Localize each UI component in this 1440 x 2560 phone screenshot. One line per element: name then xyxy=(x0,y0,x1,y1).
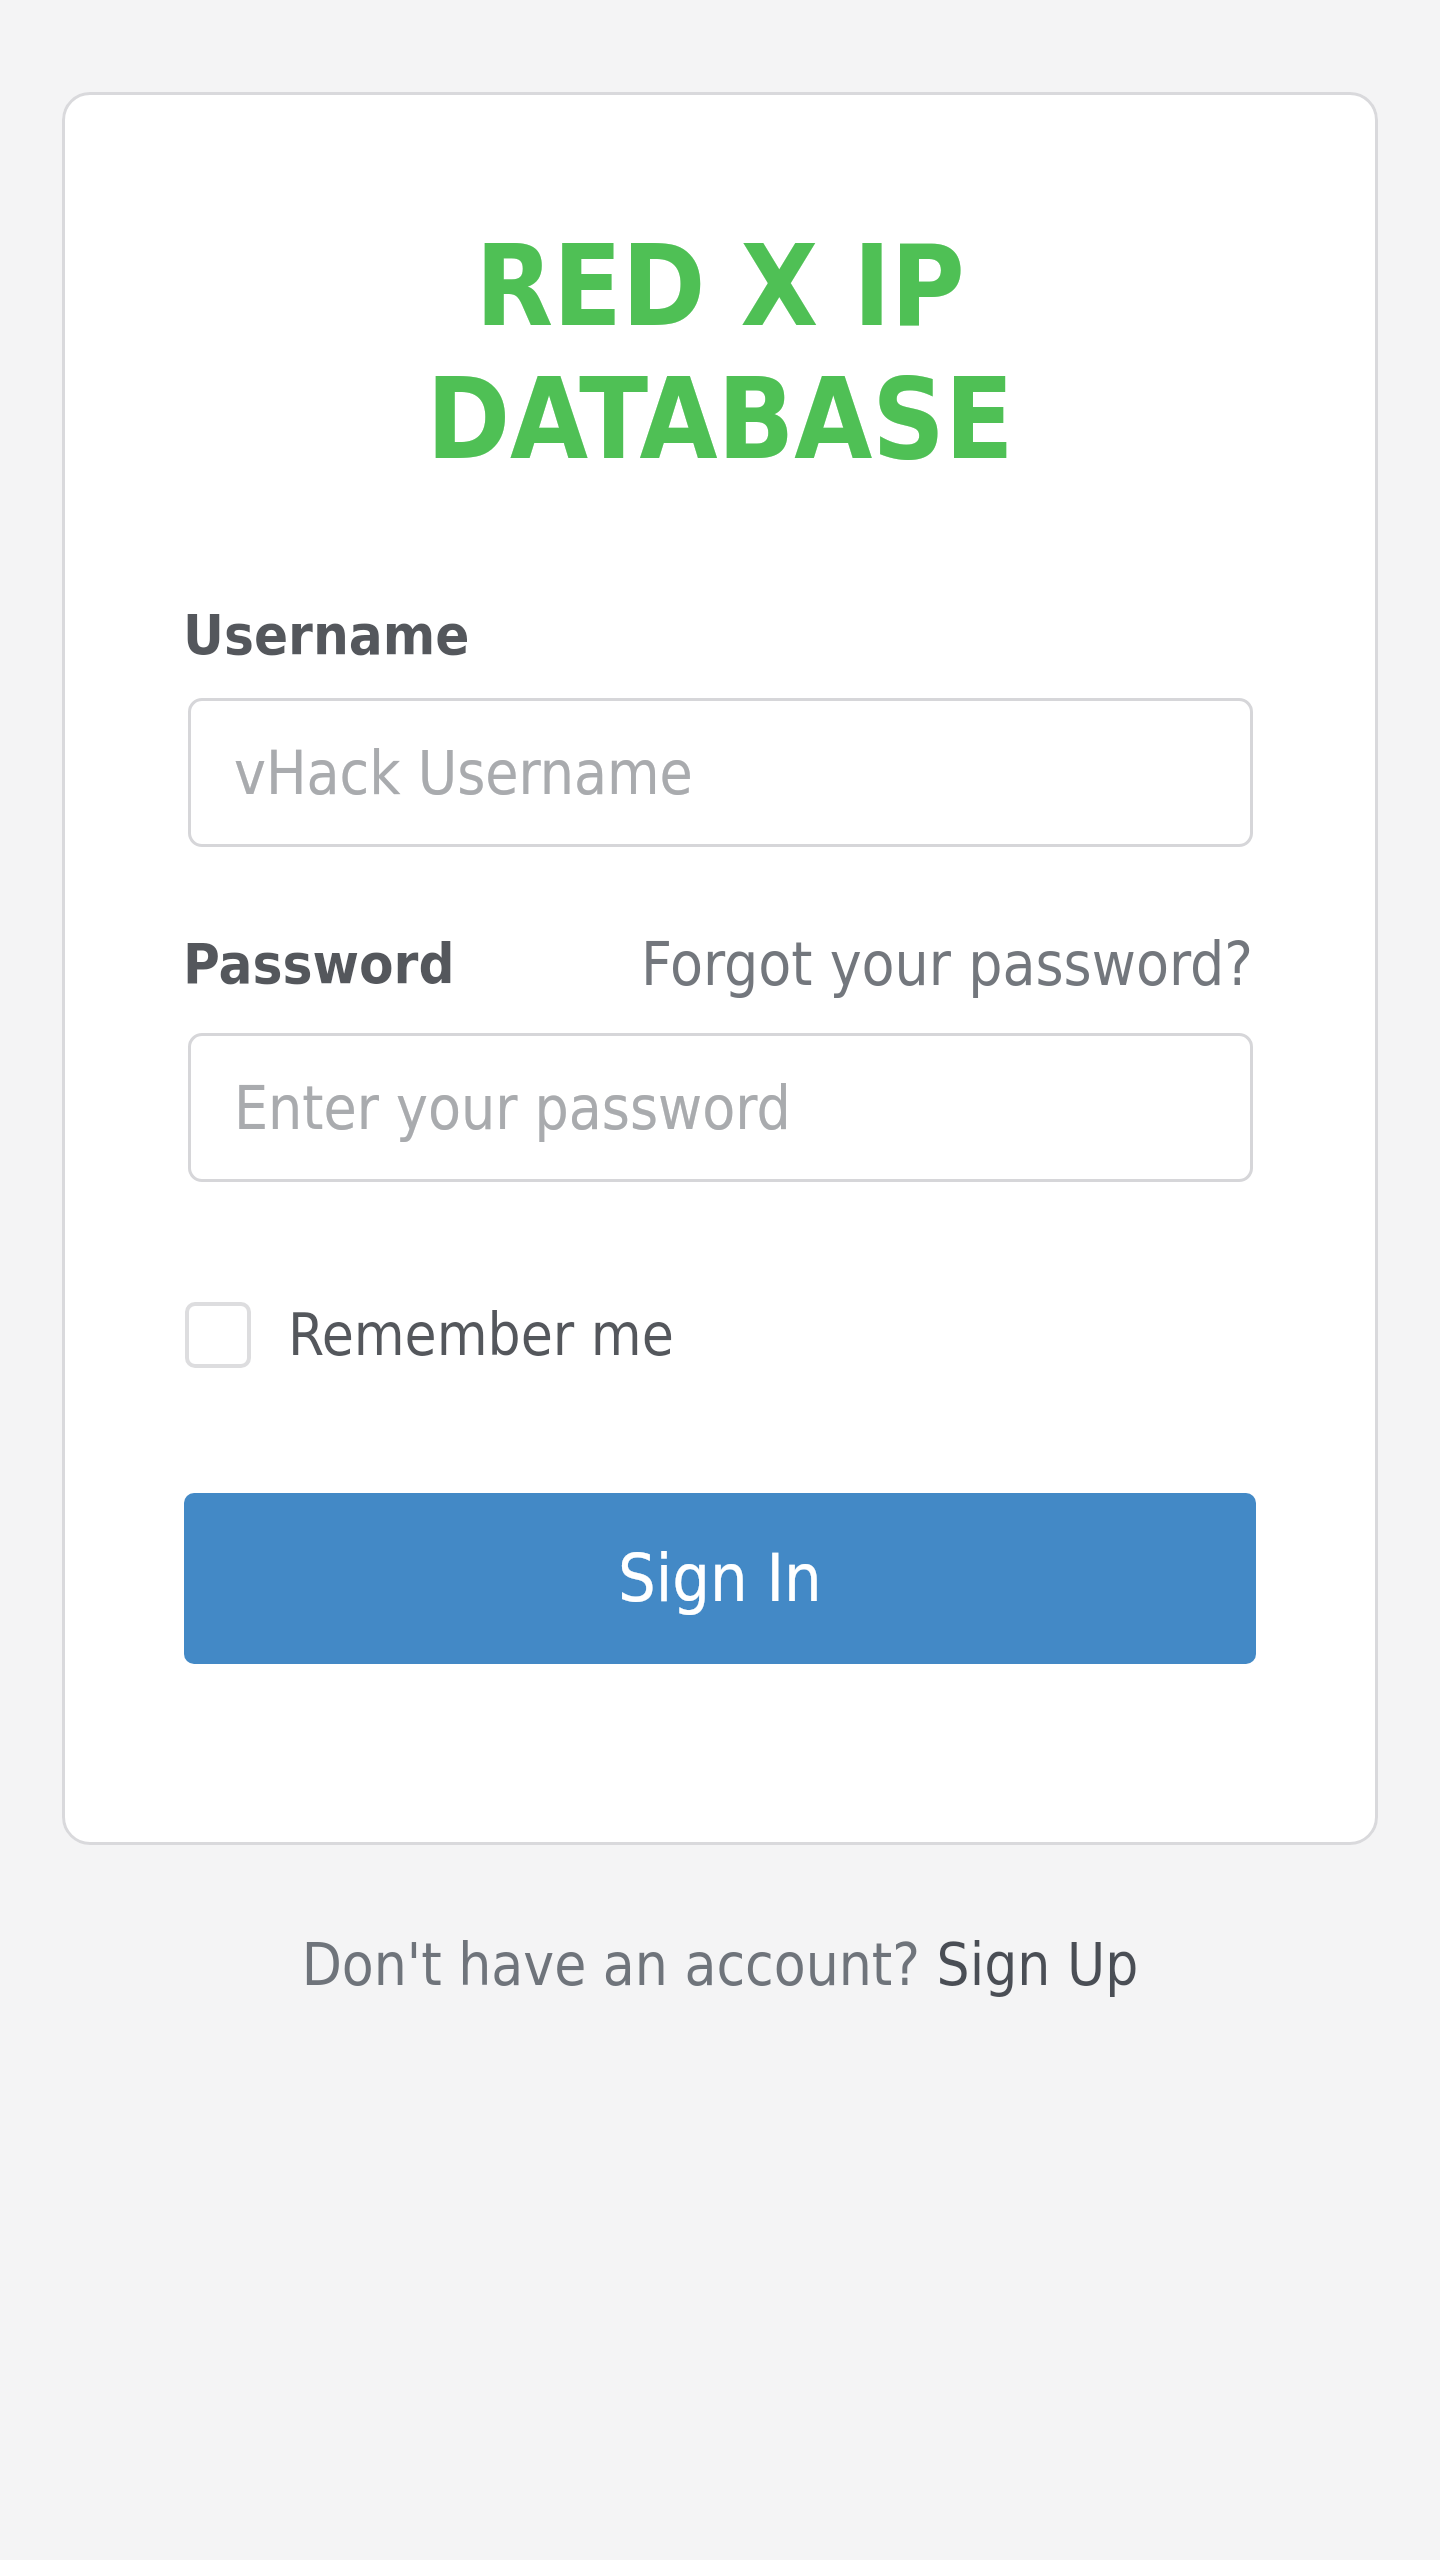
staticText: Password xyxy=(183,931,455,996)
staticText: vHack Username xyxy=(234,738,693,808)
button[interactable]: Sign In xyxy=(184,1493,1256,1664)
button[interactable]: Enter your password xyxy=(188,1033,1253,1182)
staticText: Sign In xyxy=(618,1540,822,1617)
staticText: RED X IP xyxy=(0,221,1440,351)
button[interactable]: vHack Username xyxy=(188,698,1253,847)
staticText: Enter your password xyxy=(234,1073,791,1143)
staticText: Username xyxy=(183,602,470,667)
button[interactable]: Don't have an account? Sign Up xyxy=(0,1931,1440,1999)
button[interactable]: Forgot your password? xyxy=(641,929,1253,999)
staticText: DATABASE xyxy=(0,354,1440,484)
button[interactable]: Remember me xyxy=(185,1301,674,1369)
staticText: Remember me xyxy=(288,1301,674,1369)
